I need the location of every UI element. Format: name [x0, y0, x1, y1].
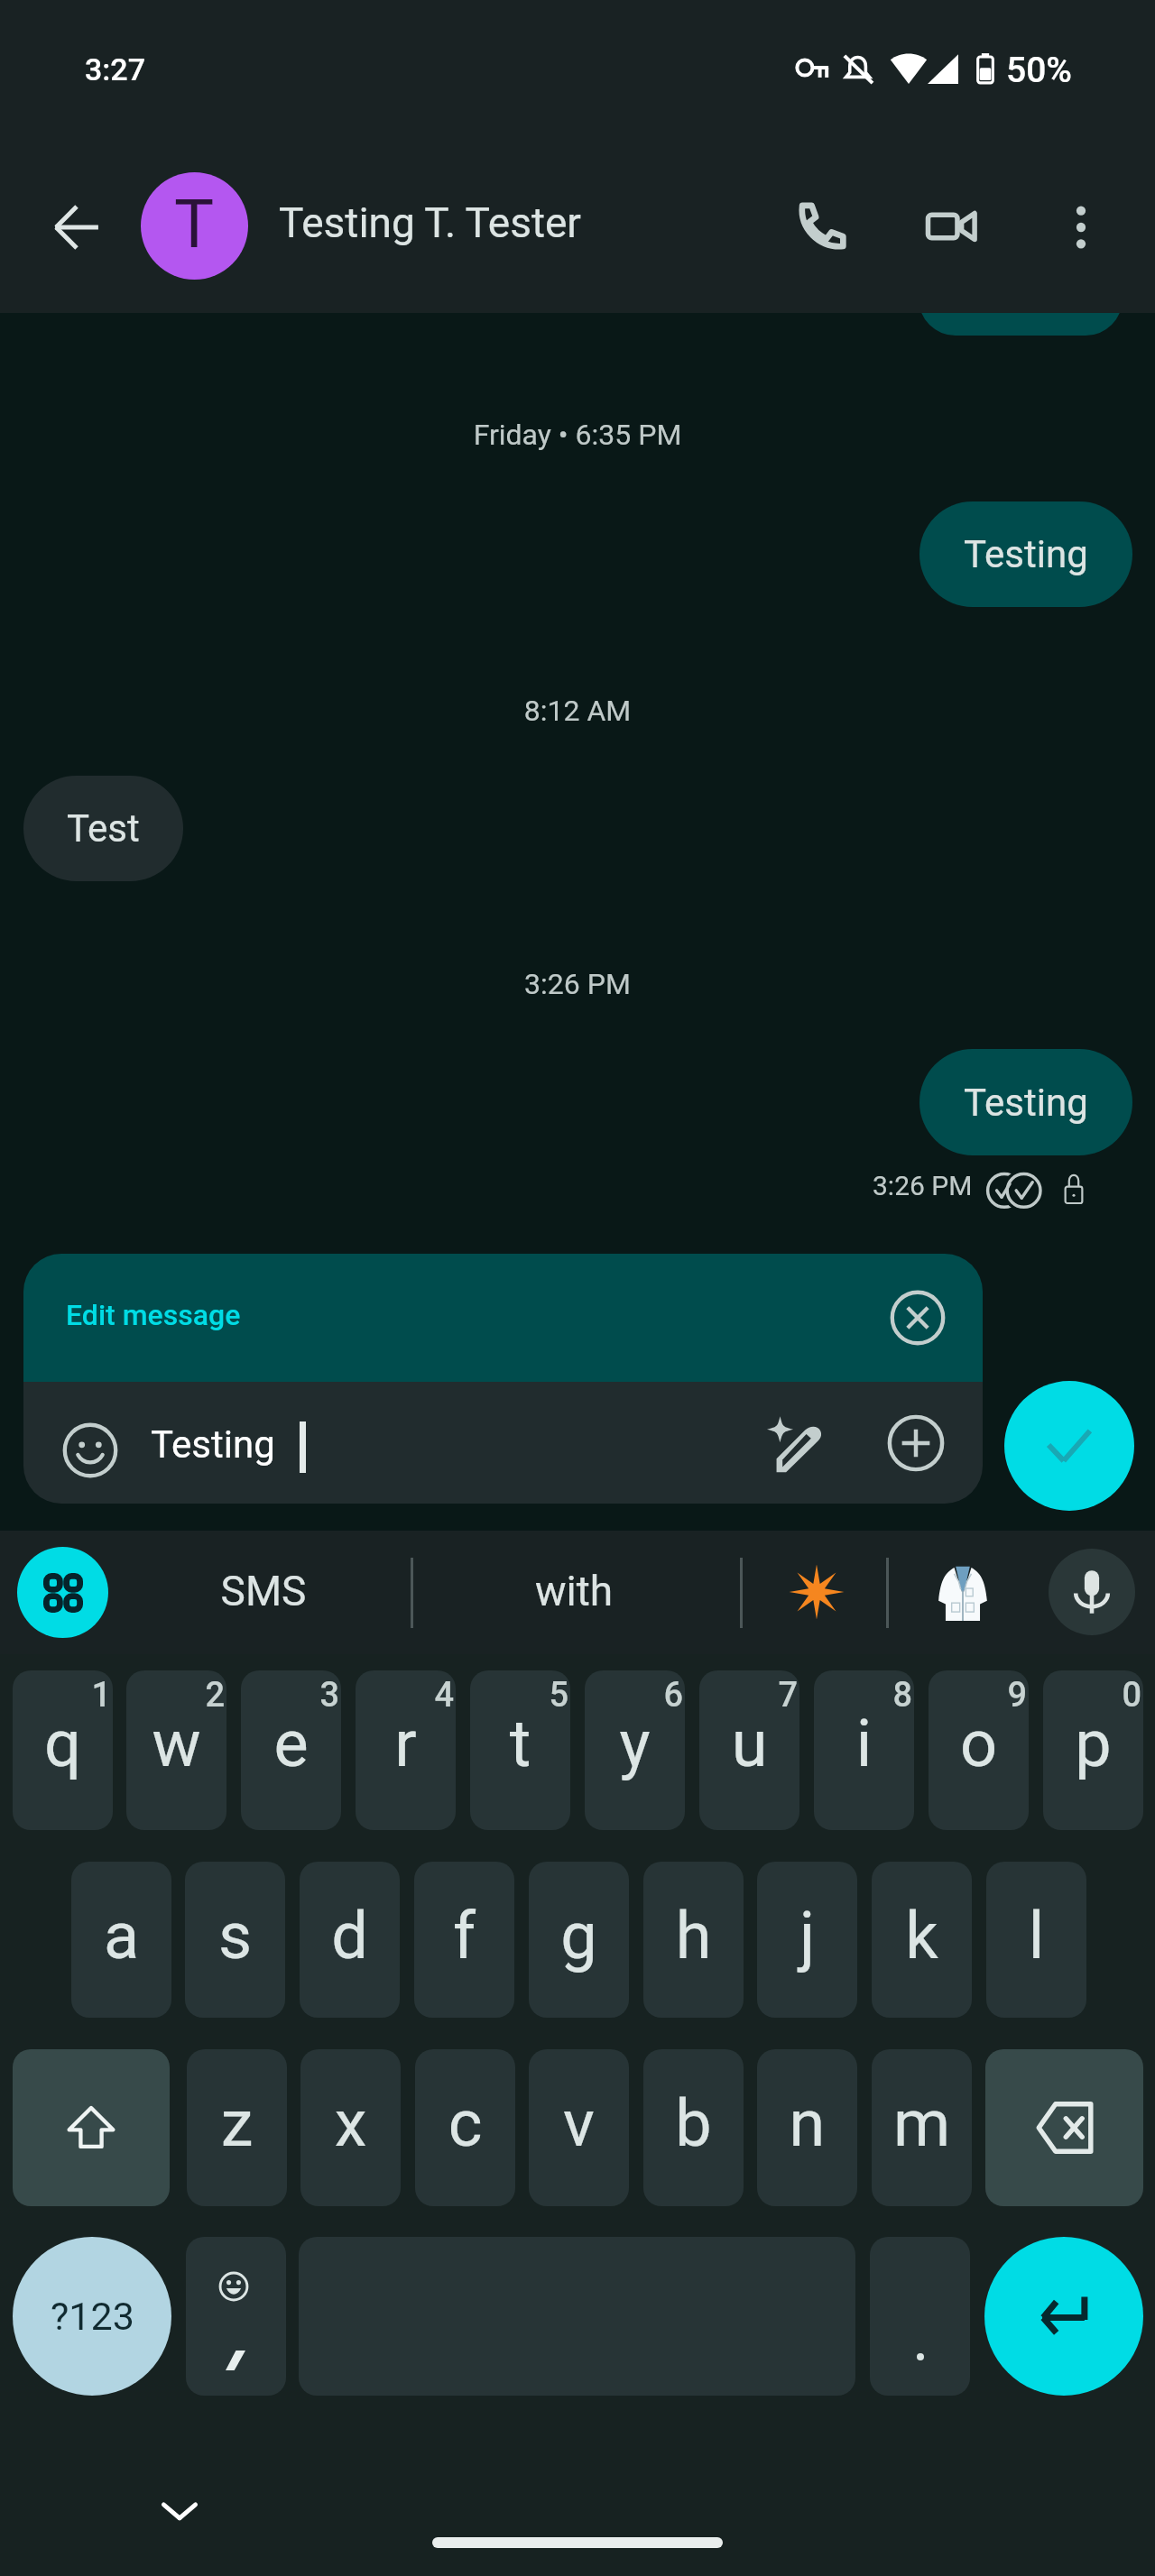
button[interactable]: Magic compose: [764, 1411, 829, 1476]
staticText: z: [187, 2085, 287, 2167]
staticText: 8:12 AM: [0, 694, 1155, 741]
button[interactable]: s: [185, 1862, 285, 2018]
staticText: w: [126, 1706, 226, 1787]
staticText: Test: [67, 806, 140, 851]
button[interactable]: Save edit: [1004, 1381, 1134, 1511]
button[interactable]: Backspace: [985, 2049, 1143, 2206]
button[interactable]: 4: [356, 1670, 456, 1830]
button[interactable]: Voice input: [1049, 1549, 1135, 1635]
staticText: g: [529, 1898, 629, 1979]
button[interactable]: 6: [585, 1670, 685, 1830]
staticText: j: [757, 1898, 857, 1979]
button[interactable]: 3: [241, 1670, 341, 1830]
staticText: s: [185, 1898, 285, 1979]
button[interactable]: b: [643, 2049, 744, 2206]
button[interactable]: Back: [38, 189, 115, 266]
staticText: 6: [585, 1675, 683, 1716]
button[interactable]: SMS: [128, 1567, 399, 1621]
button[interactable]: Hide keyboard: [153, 2484, 206, 2536]
staticText: e: [241, 1706, 341, 1787]
staticText: 3: [241, 1675, 339, 1716]
staticText: o: [929, 1706, 1029, 1787]
button[interactable]: g: [529, 1862, 629, 2018]
staticText: b: [643, 2085, 744, 2167]
staticText: v: [529, 2085, 629, 2167]
staticText: 0: [1043, 1675, 1141, 1716]
staticText: d: [300, 1898, 400, 1979]
button[interactable]: Cancel edit: [886, 1286, 949, 1349]
staticText: m: [872, 2085, 972, 2167]
staticText: 2: [126, 1675, 225, 1716]
staticText: h: [643, 1898, 744, 1979]
staticText: Friday • 6:35 PM: [0, 418, 1155, 465]
staticText: y: [585, 1706, 685, 1787]
button[interactable]: Add attachment: [883, 1411, 948, 1476]
button[interactable]: a: [71, 1862, 171, 2018]
button[interactable]: More options: [1041, 188, 1121, 267]
button[interactable]: c: [415, 2049, 515, 2206]
staticText: 3:26 PM: [0, 967, 1155, 1014]
button[interactable]: m: [872, 2049, 972, 2206]
button[interactable]: Call: [781, 187, 861, 266]
button[interactable]: Testing: [919, 1049, 1132, 1155]
button[interactable]: 5: [470, 1670, 570, 1830]
button[interactable]: 2: [126, 1670, 226, 1830]
staticText: p: [1043, 1706, 1143, 1787]
staticText: c: [415, 2085, 515, 2167]
staticText: x: [300, 2085, 401, 2167]
staticText: 7: [699, 1675, 798, 1716]
staticText: f: [414, 1898, 514, 1979]
button[interactable]: Sparkle: [789, 1564, 845, 1620]
button[interactable]: v: [529, 2049, 629, 2206]
staticText: 5: [470, 1675, 568, 1716]
button[interactable]: Testing: [919, 501, 1132, 607]
staticText: n: [757, 2085, 857, 2167]
button[interactable]: Test: [23, 776, 183, 881]
button[interactable]: Testing T. Tester: [279, 198, 581, 247]
staticText: l: [986, 1898, 1086, 1979]
button[interactable]: Enter: [984, 2237, 1143, 2396]
button[interactable]: 9: [929, 1670, 1029, 1830]
button[interactable]: with: [466, 1567, 682, 1621]
button[interactable]: d: [300, 1862, 400, 2018]
staticText: Edit message: [66, 1298, 241, 1332]
staticText: 8: [814, 1675, 912, 1716]
staticText: ?123: [51, 2294, 134, 2339]
button[interactable]: f: [414, 1862, 514, 2018]
button[interactable]: h: [643, 1862, 744, 2018]
button[interactable]: x: [300, 2049, 401, 2206]
button[interactable]: Lab coat: [938, 1565, 988, 1621]
staticText: 1: [13, 1675, 111, 1716]
staticText: 50%: [1006, 50, 1072, 91]
button[interactable]: Period: [870, 2237, 970, 2396]
staticText: t: [470, 1706, 570, 1787]
button[interactable]: 7: [699, 1670, 799, 1830]
staticText: 4: [356, 1675, 454, 1716]
button[interactable]: 8: [814, 1670, 914, 1830]
button[interactable]: T: [141, 172, 248, 280]
staticText: Testing: [964, 532, 1088, 576]
button[interactable]: Emoji and comma: [186, 2237, 286, 2396]
button[interactable]: ?123: [13, 2237, 171, 2396]
button[interactable]: 1: [13, 1670, 113, 1830]
button[interactable]: n: [757, 2049, 857, 2206]
button[interactable]: l: [986, 1862, 1086, 2018]
button[interactable]: k: [872, 1862, 972, 2018]
button[interactable]: Video call: [911, 187, 991, 266]
staticText: 9: [929, 1675, 1027, 1716]
staticText: T: [174, 185, 215, 263]
button[interactable]: 0: [1043, 1670, 1143, 1830]
staticText: a: [71, 1898, 171, 1979]
button[interactable]: Keyboard apps: [17, 1547, 108, 1638]
staticText: q: [13, 1706, 113, 1787]
staticText: 3:27: [85, 51, 145, 87]
staticText: Testing: [964, 1081, 1088, 1125]
button[interactable]: Shift: [13, 2049, 170, 2206]
staticText: r: [356, 1706, 456, 1787]
button[interactable]: j: [757, 1862, 857, 2018]
button[interactable]: Emoji: [58, 1418, 123, 1483]
staticText: u: [699, 1706, 799, 1787]
button[interactable]: z: [187, 2049, 287, 2206]
staticText: k: [872, 1898, 972, 1979]
